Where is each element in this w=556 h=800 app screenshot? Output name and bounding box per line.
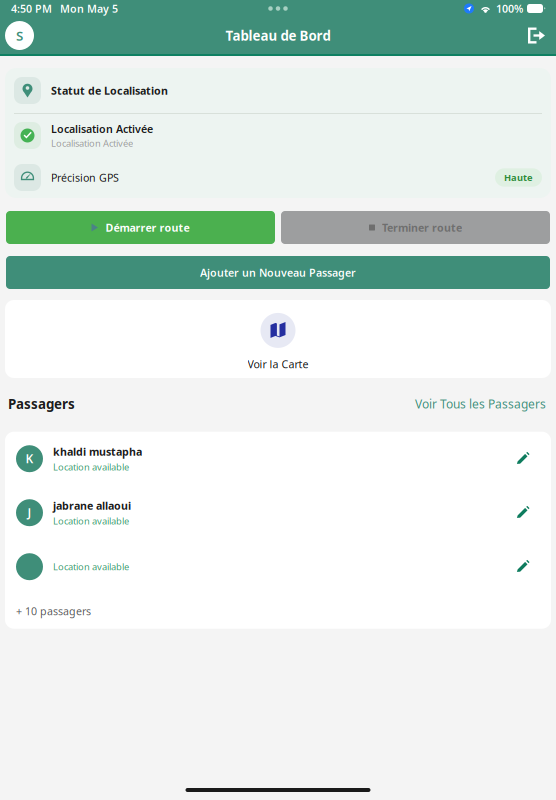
staticText: J [27, 505, 31, 521]
staticText: Tableau de Bord [225, 27, 330, 44]
staticText: Voir la Carte [247, 357, 308, 371]
button[interactable]: Edit passenger [512, 556, 534, 578]
staticText: Mon May 5 [60, 1, 118, 16]
staticText: khaldi mustapha [53, 444, 142, 459]
staticText: S [16, 27, 23, 44]
staticText: Précision GPS [51, 170, 119, 185]
staticText: Haute [504, 171, 533, 184]
staticText: Statut de Localisation [51, 83, 168, 98]
staticText: Localisation Activée [51, 122, 153, 136]
button[interactable]: Profile [5, 21, 34, 50]
button[interactable]: Edit passenger [512, 448, 534, 470]
staticText: Location available [53, 515, 129, 527]
button[interactable]: Log out [526, 25, 546, 45]
button[interactable]: Démarrer route [6, 211, 275, 244]
staticText: Location available [53, 461, 129, 473]
staticText: Démarrer route [105, 220, 189, 235]
staticText: Passagers [8, 395, 75, 413]
button[interactable]: Terminer route [281, 211, 550, 244]
staticText: Localisation Activée [51, 137, 133, 149]
staticText: Location available [53, 560, 129, 573]
staticText: Terminer route [382, 220, 462, 235]
staticText: 4:50 PM [11, 1, 52, 16]
button[interactable]: Ajouter un Nouveau Passager [6, 256, 550, 289]
staticText: K [25, 451, 33, 467]
button[interactable]: Voir Tous les Passagers [415, 396, 546, 412]
staticText: + 10 passagers [16, 604, 91, 618]
button[interactable]: Voir la Carte [5, 300, 551, 378]
staticText: Voir Tous les Passagers [415, 396, 546, 412]
staticText: jabrane allaoui [53, 498, 131, 513]
staticText: 100% [496, 1, 523, 16]
staticText: Ajouter un Nouveau Passager [200, 265, 356, 280]
button[interactable]: Edit passenger [512, 502, 534, 524]
